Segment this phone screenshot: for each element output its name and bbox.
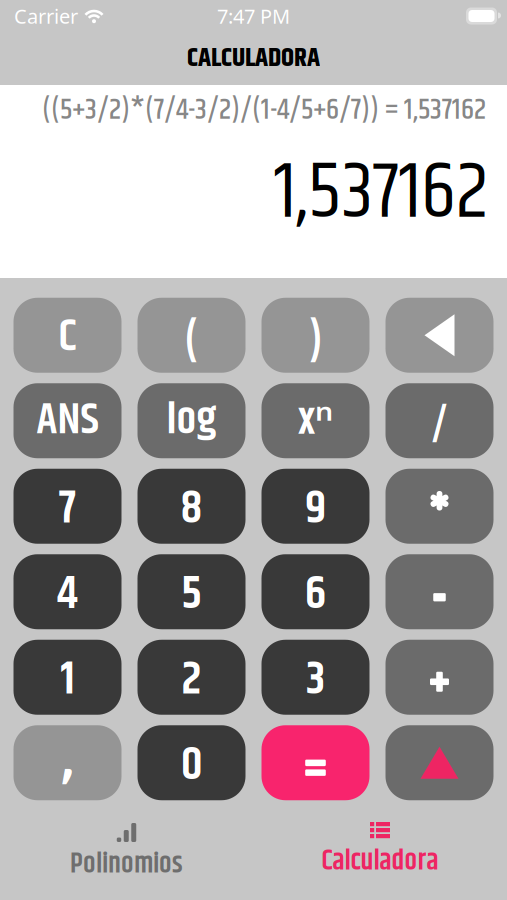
- button[interactable]: Calculadora: [253, 800, 507, 900]
- button[interactable]: Multiply: [385, 469, 493, 544]
- button[interactable]: 3: [261, 640, 369, 715]
- button[interactable]: log: [137, 383, 245, 458]
- staticText: ): [308, 308, 323, 377]
- button[interactable]: xⁿ: [261, 383, 369, 458]
- staticText: 4: [57, 559, 78, 630]
- staticText: 7: [59, 474, 76, 545]
- staticText: Polinomios: [70, 843, 183, 886]
- button[interactable]: ANS: [13, 383, 121, 458]
- staticText: CALCULADORA: [187, 38, 320, 79]
- button[interactable]: ,: [13, 725, 121, 800]
- button[interactable]: ): [261, 298, 369, 373]
- button[interactable]: (: [137, 298, 245, 373]
- button[interactable]: 4: [13, 554, 121, 629]
- button[interactable]: 5: [137, 554, 245, 629]
- staticText: Calculadora: [321, 840, 438, 883]
- button[interactable]: 0: [137, 725, 245, 800]
- button[interactable]: 1: [13, 640, 121, 715]
- staticText: ,: [61, 712, 73, 806]
- staticText: 7:47 PM: [217, 3, 290, 29]
- button[interactable]: Polinomios: [0, 800, 253, 900]
- staticText: 5: [181, 559, 201, 630]
- staticText: 0: [181, 730, 202, 801]
- button[interactable]: 7: [13, 469, 121, 544]
- staticText: xⁿ: [298, 387, 333, 455]
- staticText: 1: [60, 645, 74, 716]
- staticText: ((5+3/2)*(7/4-3/2)/(1-4/5+6/7)) = 1,5371…: [42, 88, 486, 133]
- button[interactable]: 2: [137, 640, 245, 715]
- staticText: 9: [305, 474, 326, 545]
- staticText: 6: [305, 559, 326, 630]
- staticText: 2: [181, 645, 201, 716]
- button[interactable]: 8: [137, 469, 245, 544]
- button[interactable]: 6: [261, 554, 369, 629]
- button[interactable]: C: [13, 298, 121, 373]
- staticText: /: [431, 396, 448, 455]
- staticText: 1,537162: [274, 133, 488, 255]
- staticText: Carrier: [14, 3, 78, 29]
- staticText: log: [166, 387, 216, 454]
- button[interactable]: Subtract: [385, 554, 493, 629]
- button[interactable]: Delete: [385, 298, 493, 373]
- button[interactable]: /: [385, 383, 493, 458]
- staticText: C: [58, 303, 76, 372]
- staticText: 3: [306, 645, 325, 716]
- button[interactable]: Scroll up: [385, 725, 493, 800]
- button[interactable]: 9: [261, 469, 369, 544]
- staticText: 8: [180, 474, 202, 545]
- button[interactable]: Equals: [261, 725, 369, 800]
- staticText: (: [184, 308, 199, 377]
- staticText: ANS: [36, 387, 98, 454]
- button[interactable]: Add: [385, 640, 493, 715]
